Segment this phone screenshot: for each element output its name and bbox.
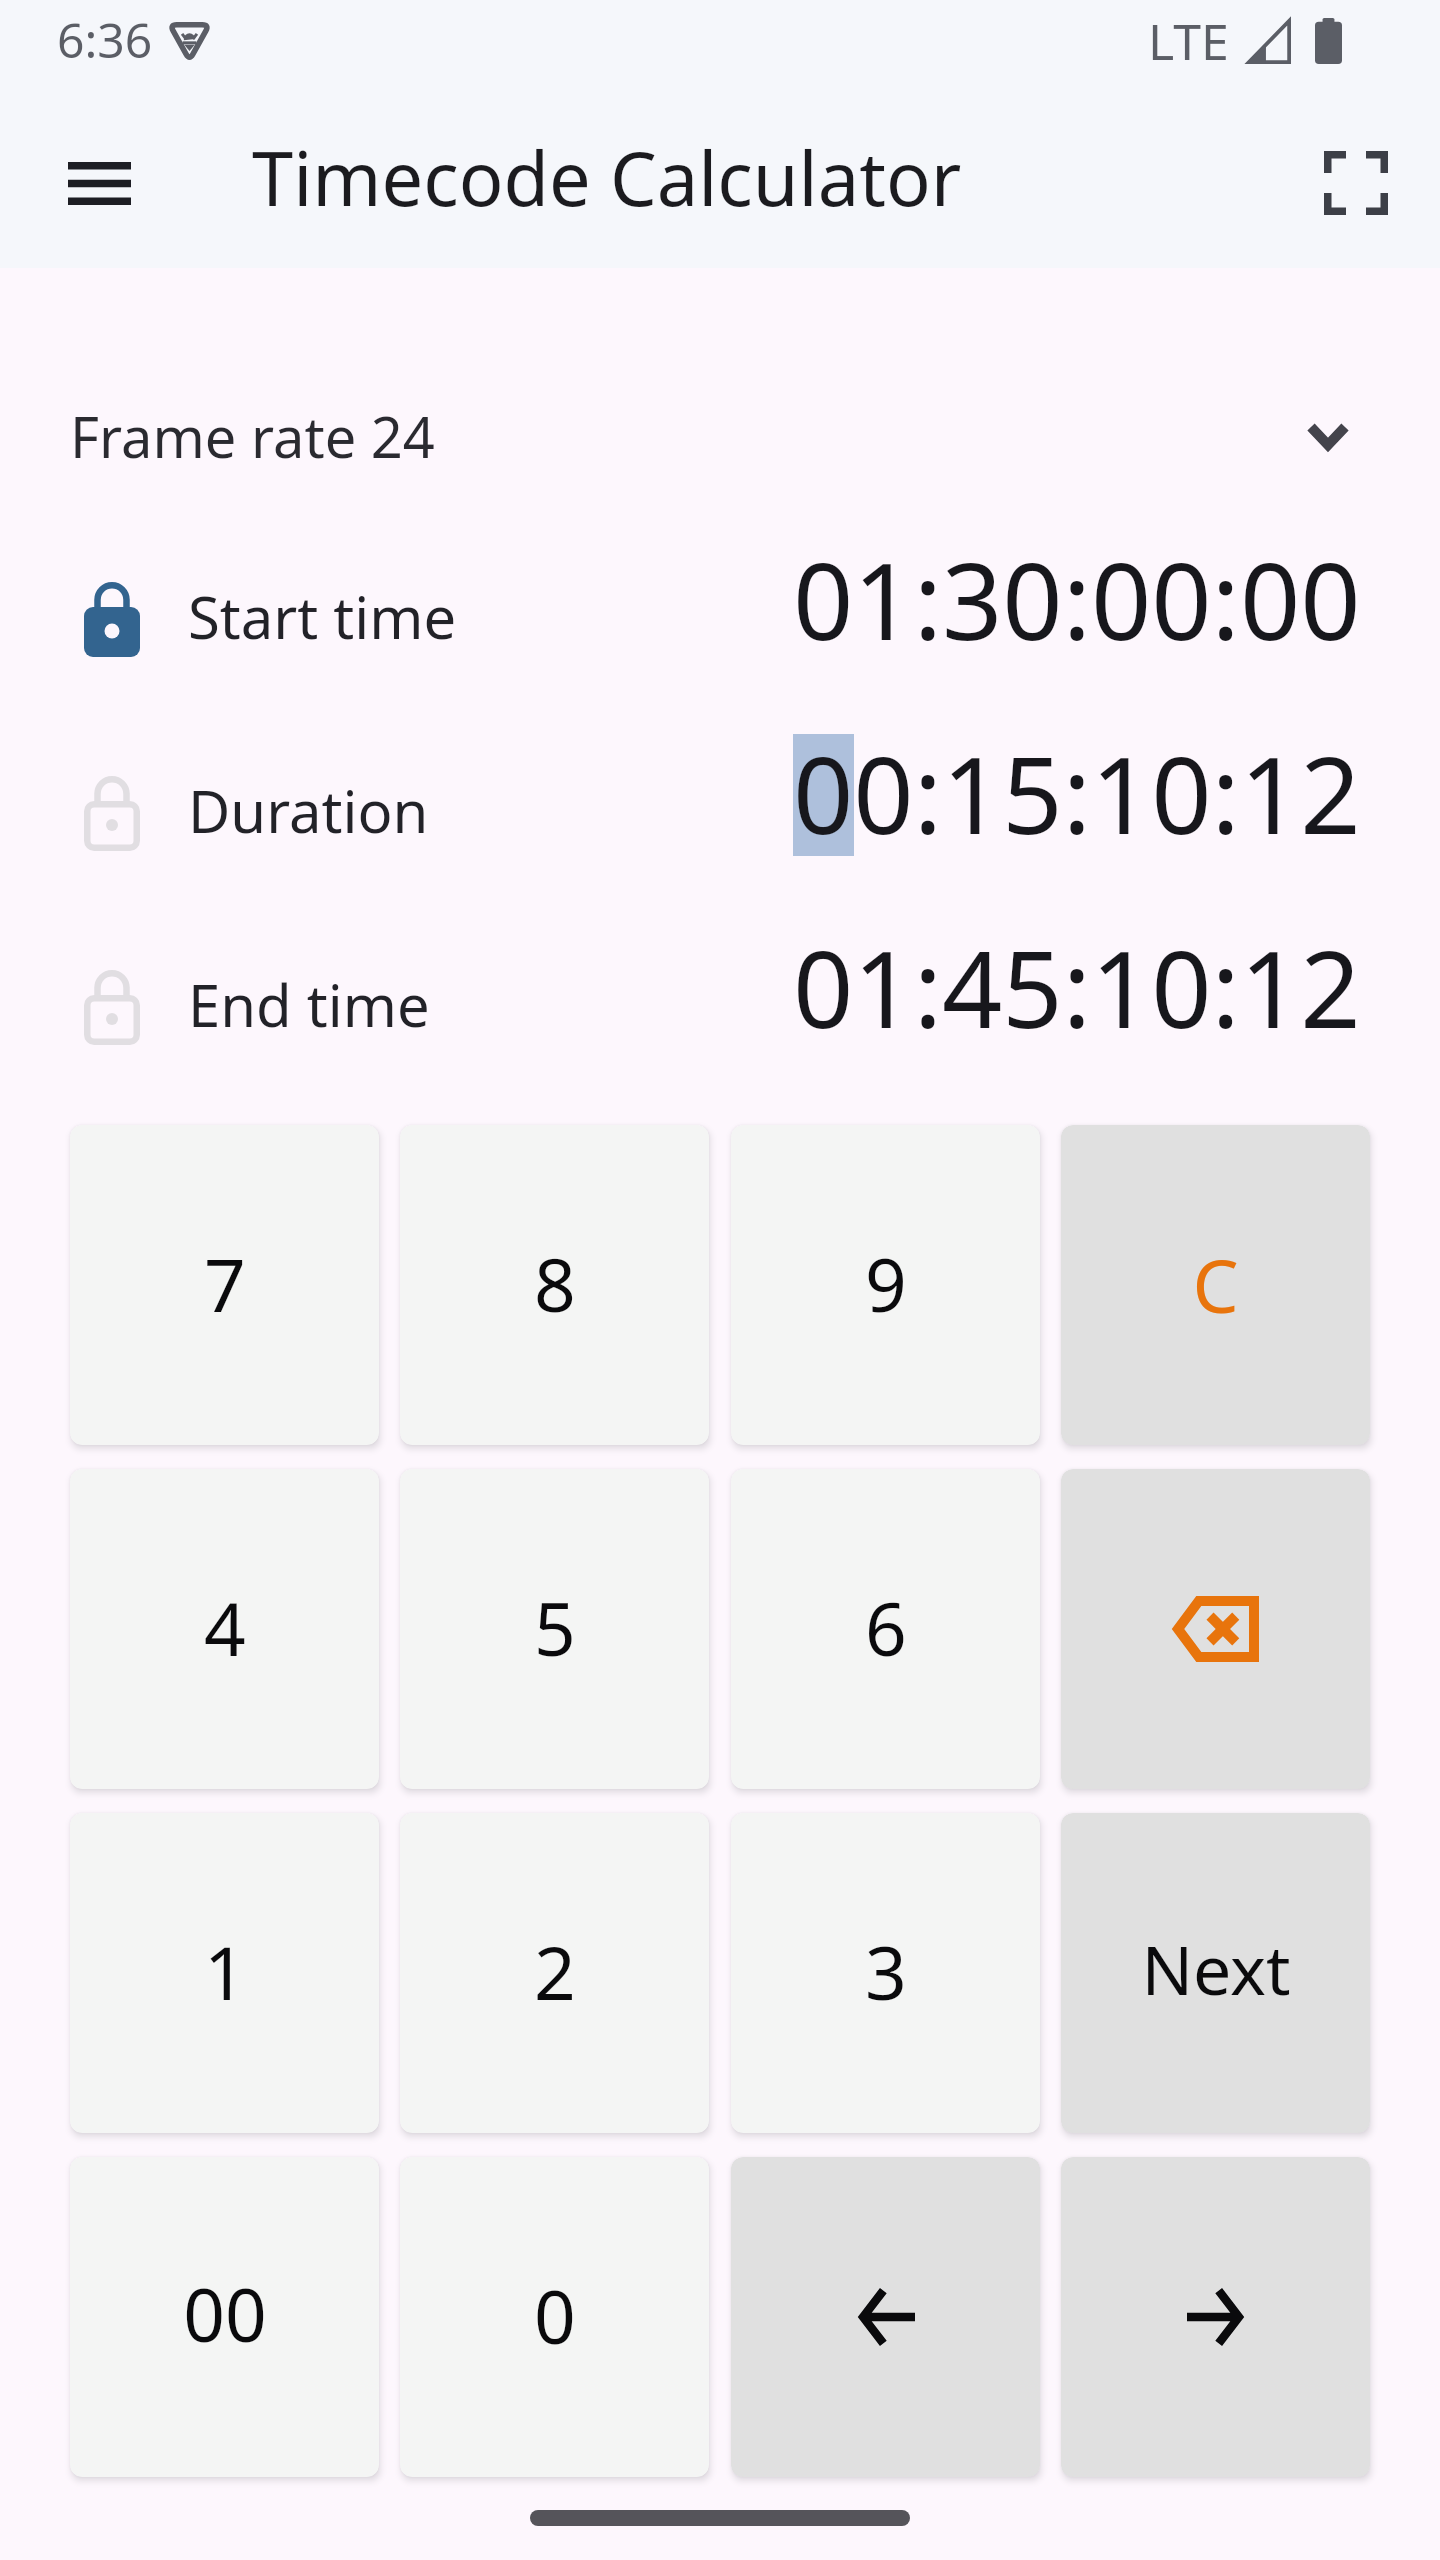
button[interactable]: 9 [731, 1125, 1040, 1445]
button[interactable]: Next [1061, 1813, 1370, 2133]
staticText: Start time [188, 577, 457, 656]
staticText: 0 [534, 2266, 576, 2365]
staticText: 5 [534, 1578, 576, 1677]
button[interactable]: Backspace [1061, 1469, 1370, 1789]
button[interactable]: 4 [70, 1469, 379, 1789]
staticText: Duration [188, 771, 429, 850]
staticText: 9 [865, 1234, 907, 1333]
button[interactable]: Duration [0, 735, 1440, 885]
button[interactable]: Toggle fullscreen [1293, 120, 1419, 246]
staticText: C [1192, 1235, 1239, 1334]
staticText: 6:36 [57, 7, 153, 72]
staticText: 2 [534, 1922, 576, 2021]
staticText: 7 [204, 1234, 246, 1333]
button[interactable]: 3 [731, 1813, 1040, 2133]
staticText: 6 [865, 1578, 907, 1677]
button[interactable]: 7 [70, 1125, 379, 1445]
button[interactable]: Next field [1061, 2157, 1370, 2477]
staticText: 01:30:00:00 [793, 527, 1361, 671]
staticText: 3 [865, 1922, 907, 2021]
button[interactable]: 0 [400, 2157, 709, 2477]
staticText: Frame rate 24 [70, 398, 435, 474]
button[interactable]: 6 [731, 1469, 1040, 1789]
button[interactable]: 1 [70, 1813, 379, 2133]
button[interactable]: 8 [400, 1125, 709, 1445]
button[interactable]: C [1061, 1125, 1370, 1445]
button[interactable]: Frame rate 24 [0, 382, 1440, 490]
button[interactable]: Start time [0, 541, 1440, 691]
button[interactable]: Previous field [731, 2157, 1040, 2477]
staticText: 00 [183, 2264, 267, 2363]
button[interactable]: End time [0, 929, 1440, 1079]
staticText: End time [188, 965, 430, 1044]
button[interactable]: 2 [400, 1813, 709, 2133]
button[interactable]: 5 [400, 1469, 709, 1789]
staticText: 00:15:10:12 [793, 721, 1361, 865]
staticText: LTE [1148, 7, 1229, 75]
staticText: 8 [534, 1234, 576, 1333]
staticText: Timecode Calculator [252, 127, 962, 228]
staticText: 4 [204, 1578, 246, 1677]
button[interactable]: 00 [70, 2157, 379, 2477]
staticText: 01:45:10:12 [793, 915, 1361, 1059]
button[interactable]: Open navigation menu [36, 120, 162, 246]
staticText: 1 [204, 1922, 246, 2021]
staticText: Next [1141, 1922, 1291, 2015]
